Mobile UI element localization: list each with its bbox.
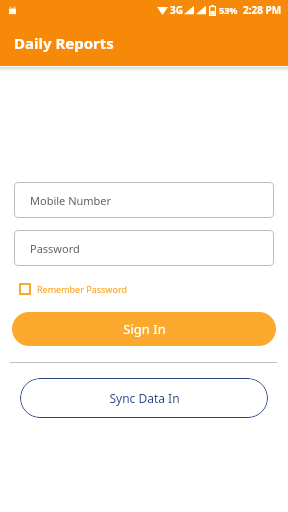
staticText: Sync Data In — [109, 390, 180, 406]
button[interactable]: Sync Data In — [20, 378, 268, 418]
staticText: Remember Password — [37, 283, 127, 295]
button[interactable]: Remember Password — [19, 283, 127, 295]
staticText: Mobile Number — [30, 193, 112, 208]
staticText: Daily Reports — [14, 33, 114, 53]
staticText: 3G — [170, 3, 183, 17]
button[interactable]: Sign In — [12, 312, 276, 346]
staticText: 2:28 PM — [243, 3, 282, 17]
button[interactable]: Mobile Number — [14, 182, 274, 218]
button[interactable]: Password — [14, 230, 274, 266]
staticText: Password — [30, 241, 80, 256]
staticText: Sign In — [123, 320, 166, 338]
staticText: 53% — [219, 4, 238, 16]
